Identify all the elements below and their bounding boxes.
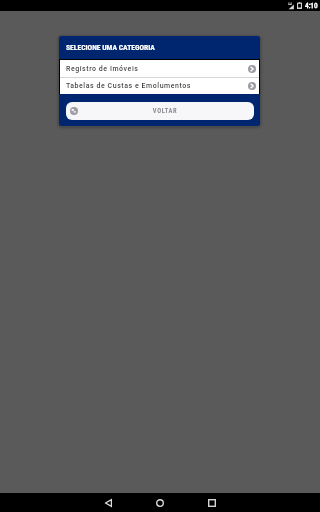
button[interactable]: Registro de Imóveis — [60, 60, 259, 77]
other: Back — [70, 107, 78, 115]
button[interactable]: Recent apps — [203, 494, 221, 512]
other: Open — [248, 82, 256, 90]
button[interactable]: Tabelas de Custas e Emolumentos — [60, 78, 259, 94]
staticText: SELECIONE UMA CATEGORIA — [66, 43, 155, 52]
staticText: 4:10 — [305, 2, 318, 10]
staticText: VOLTAR — [78, 107, 252, 115]
staticText: Tabelas de Custas e Emolumentos — [66, 82, 248, 90]
button[interactable]: Home — [151, 494, 169, 512]
button[interactable]: Back — [99, 494, 117, 512]
staticText: Registro de Imóveis — [66, 65, 248, 73]
button[interactable]: Back — [66, 102, 254, 120]
other: Open — [248, 65, 256, 73]
